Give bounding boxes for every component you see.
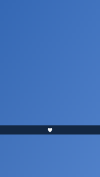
button[interactable]: Favourite	[39, 125, 61, 134]
